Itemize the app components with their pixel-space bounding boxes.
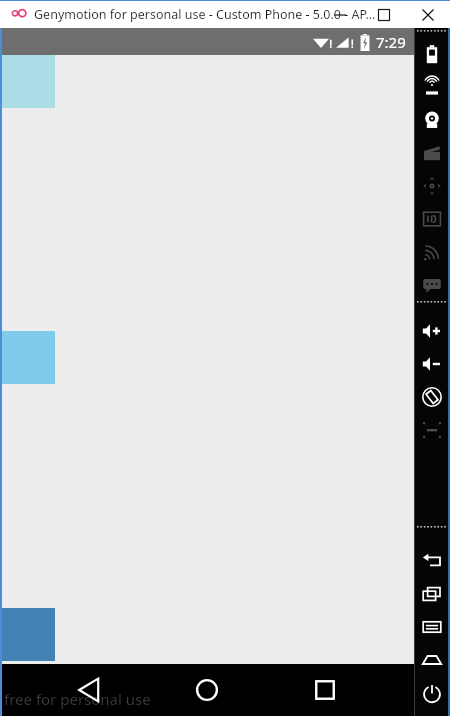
button[interactable]: SMS [414,268,450,301]
button[interactable]: Recents [297,666,353,714]
button[interactable]: Close [406,1,450,28]
button[interactable]: Accelerometer [414,169,450,202]
button[interactable]: Back [414,544,450,577]
button[interactable]: Menu [414,610,450,643]
button[interactable]: Scale one to one [414,413,450,446]
button[interactable]: Home [179,666,235,714]
button[interactable]: Power [414,676,450,709]
button[interactable]: Battery [414,37,450,70]
button[interactable]: Volume down [414,347,450,380]
button[interactable]: Home [414,643,450,676]
button[interactable]: Network [414,235,450,268]
button[interactable]: Maximize [362,1,406,28]
staticText: 7:29 [376,32,406,52]
button[interactable]: Identifiers [414,202,450,235]
staticText: Genymotion for personal use - Custom Pho… [34,6,376,23]
staticText: free for personal use [4,689,151,709]
button[interactable]: Rotate [414,380,450,413]
button[interactable]: Camera [414,103,450,136]
button[interactable]: Minimize [318,1,362,28]
button[interactable]: Video recording [414,136,450,169]
button[interactable]: Back [62,666,118,714]
button[interactable]: Recents [414,577,450,610]
button[interactable]: GPS [414,70,450,103]
button[interactable]: Volume up [414,314,450,347]
